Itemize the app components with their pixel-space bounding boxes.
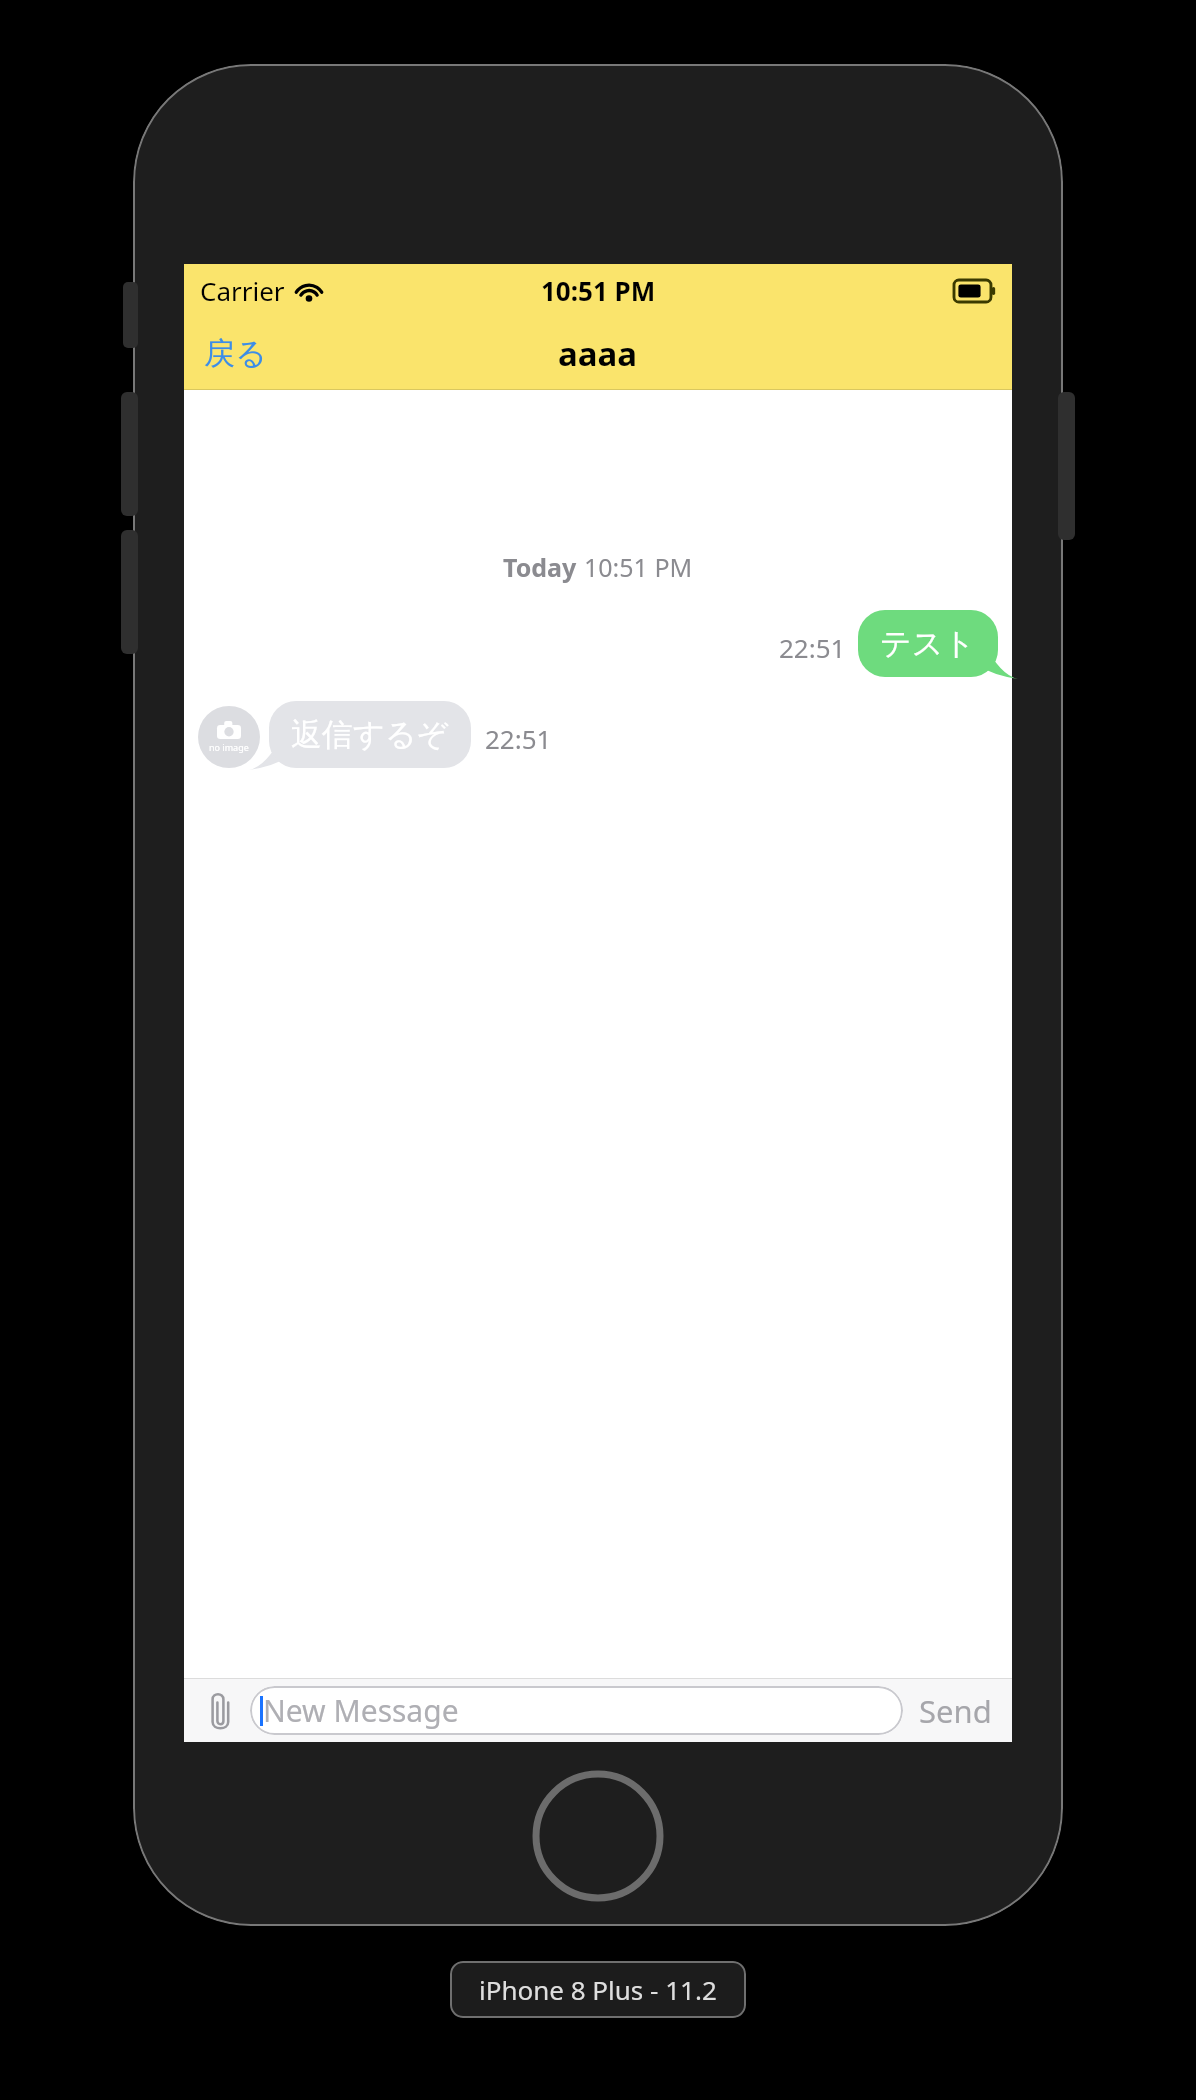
staticText: aaaa <box>558 331 638 376</box>
staticText: 22:51 <box>779 630 846 665</box>
button[interactable]: Profile image <box>198 706 260 768</box>
staticText: iPhone 8 Plus - 11.2 <box>479 1972 717 2007</box>
staticText: Today <box>503 550 577 584</box>
staticText: Send <box>919 1690 992 1732</box>
staticText: テスト <box>880 624 976 663</box>
staticText: 返信するぞ <box>291 715 449 754</box>
button[interactable]: New Message <box>250 1686 903 1735</box>
staticText: 戻る <box>204 334 267 373</box>
staticText: no image <box>209 741 249 753</box>
staticText: 10:51 PM <box>541 273 656 308</box>
staticText: New Message <box>263 1690 459 1731</box>
button[interactable]: テスト <box>858 610 998 677</box>
button[interactable]: Send <box>913 1684 998 1738</box>
staticText: 22:51 <box>485 721 552 756</box>
staticText: Carrier <box>200 273 285 308</box>
staticText: 10:51 PM <box>584 550 693 584</box>
button[interactable]: Attach file <box>198 1688 244 1734</box>
button[interactable]: 戻る <box>190 328 281 379</box>
button[interactable]: 返信するぞ <box>269 701 471 768</box>
